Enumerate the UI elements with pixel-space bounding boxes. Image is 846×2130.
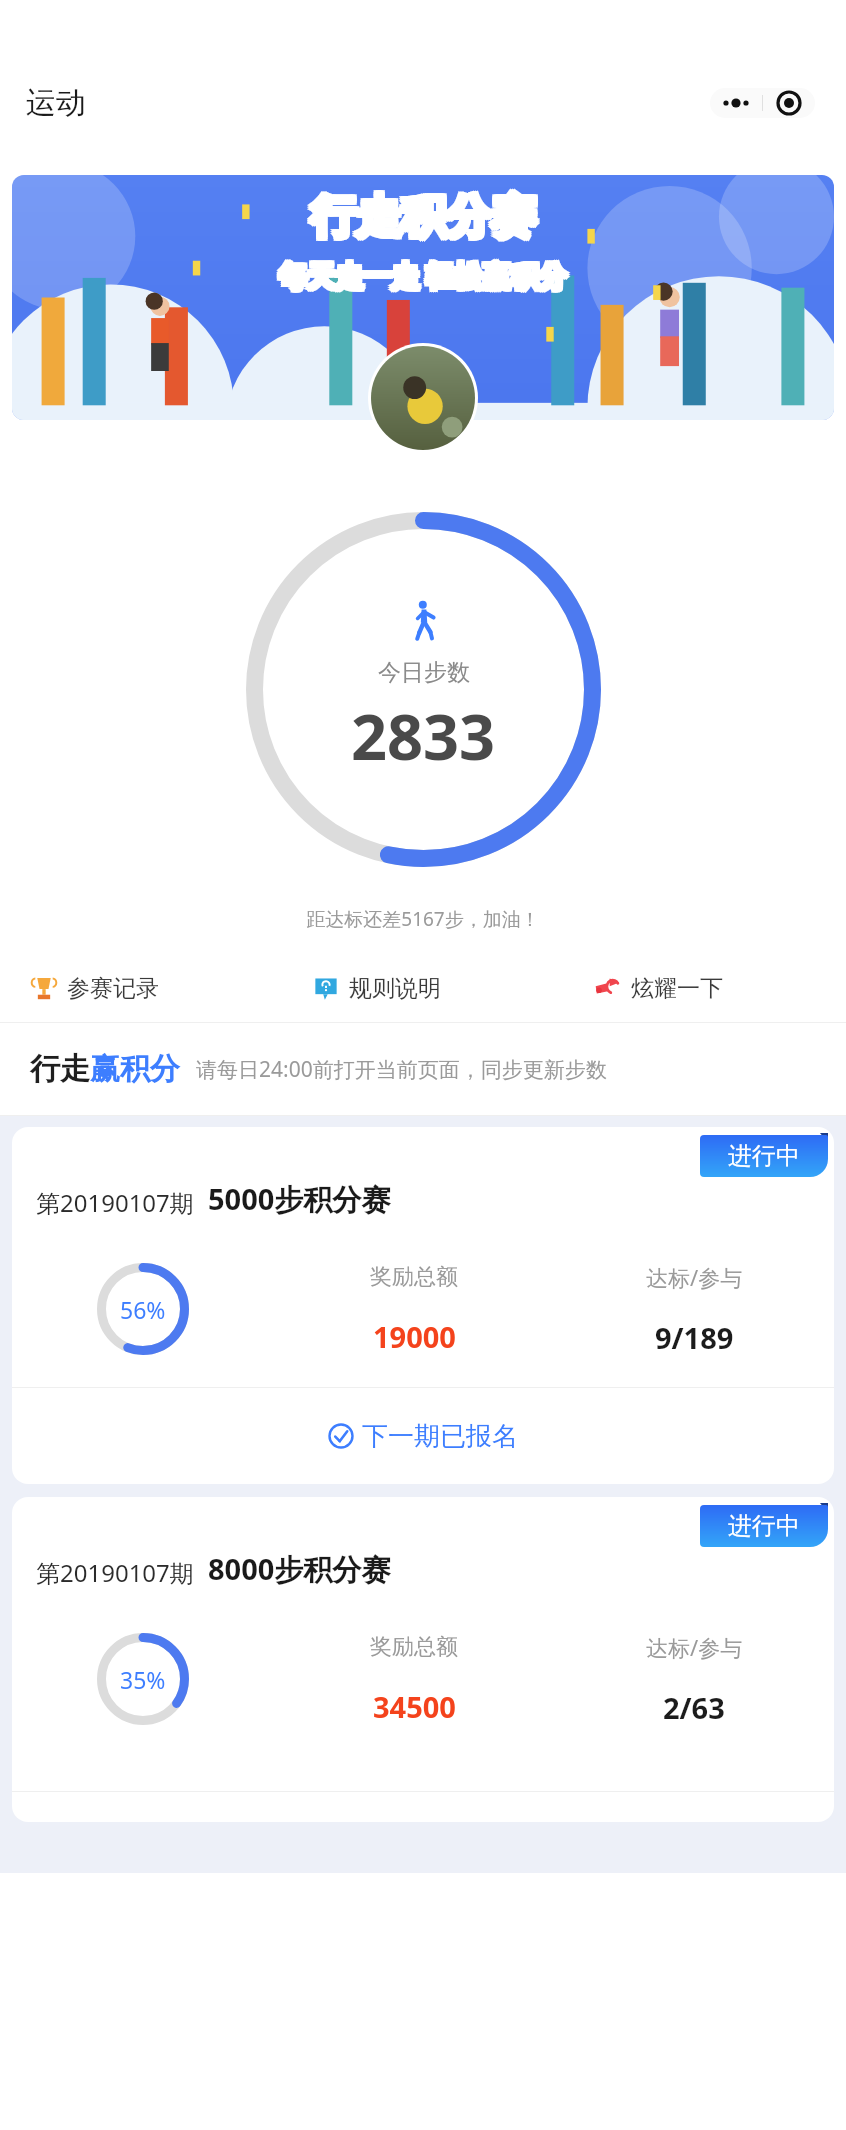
staticText: 每天走一走 轻松赢积分 [277, 256, 565, 294]
button[interactable]: 行走积分赛 [12, 175, 834, 420]
staticText: 行走积分赛 [309, 189, 534, 246]
button[interactable]: 进行中 [700, 1135, 828, 1177]
staticText: 行走积分赛 [313, 189, 538, 246]
staticText: 规则说明 [349, 974, 441, 1003]
staticText: 2/63 [663, 1688, 725, 1727]
staticText: 每天走一走 轻松赢积分 [279, 254, 567, 292]
staticText: 今日步数 [378, 658, 470, 687]
button[interactable]: 下一期已报名 [12, 1388, 834, 1484]
button[interactable]: Avatar [371, 346, 475, 450]
staticText: 35% [120, 1664, 166, 1695]
staticText: 行走积分赛 [313, 187, 538, 244]
staticText: 距达标还差5167步，加油！ [0, 906, 846, 932]
button[interactable]: 参赛记录 [0, 954, 282, 1022]
staticText: 第20190107期 [36, 1186, 194, 1219]
staticText: 行走积分赛 [311, 189, 536, 246]
button[interactable]: 炫耀一下 [564, 954, 846, 1022]
staticText: 5000步积分赛 [208, 1179, 391, 1219]
staticText: 下一期已报名 [362, 1420, 518, 1453]
staticText: 进行中 [728, 1141, 800, 1171]
staticText: 8000步积分赛 [208, 1549, 391, 1589]
staticText: 每天走一走 轻松赢积分 [277, 254, 565, 292]
staticText: 行走积分赛 [309, 187, 534, 244]
button[interactable]: 第20190107期 [12, 1497, 834, 1822]
staticText: 行走积分赛 [309, 191, 534, 248]
staticText: 每天走一走 轻松赢积分 [279, 258, 567, 296]
staticText: 每天走一走 轻松赢积分 [279, 256, 567, 294]
staticText: 2833 [351, 693, 496, 779]
staticText: 炫耀一下 [631, 974, 723, 1003]
staticText: 每天走一走 轻松赢积分 [281, 256, 569, 294]
staticText: 参赛记录 [67, 974, 159, 1003]
staticText: 达标/参与 [646, 1262, 743, 1292]
staticText: 每天走一走 轻松赢积分 [281, 258, 569, 296]
staticText: 行走赢积分 [30, 1050, 180, 1088]
staticText: 每天走一走 轻松赢积分 [281, 254, 569, 292]
staticText: 奖励总额 [370, 1633, 458, 1661]
staticText: 行走积分赛 [311, 187, 536, 244]
staticText: 行走积分赛 [313, 191, 538, 248]
button[interactable]: 规则说明 [282, 954, 564, 1022]
staticText: 34500 [373, 1687, 456, 1726]
button[interactable]: More and close [710, 88, 815, 118]
staticText: 达标/参与 [646, 1632, 743, 1662]
staticText: 请每日24:00前打开当前页面，同步更新步数 [196, 1055, 607, 1084]
staticText: 19000 [373, 1317, 456, 1356]
button[interactable]: 第20190107期 [12, 1127, 834, 1484]
staticText: 第20190107期 [36, 1556, 194, 1589]
button[interactable]: 进行中 [700, 1505, 828, 1547]
staticText: 每天走一走 轻松赢积分 [277, 258, 565, 296]
staticText: 奖励总额 [370, 1263, 458, 1291]
staticText: 运动 [26, 84, 86, 122]
staticText: 56% [120, 1294, 166, 1325]
staticText: 9/189 [655, 1318, 734, 1357]
button[interactable]: 行走赢积分 [0, 1023, 846, 1115]
staticText: 行走积分赛 [311, 191, 536, 248]
staticText: 进行中 [728, 1511, 800, 1541]
